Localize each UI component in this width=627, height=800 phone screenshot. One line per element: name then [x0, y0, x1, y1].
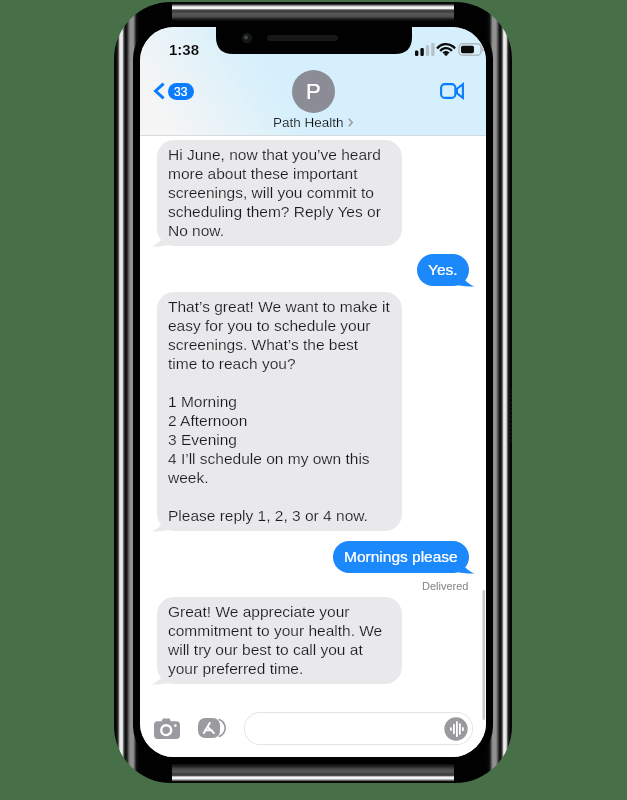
staticText: Path Health: [273, 115, 344, 130]
button[interactable]: Back, 33 unread messages: [149, 77, 199, 105]
staticText: Delivered: [422, 580, 469, 592]
button[interactable]: [244, 712, 473, 745]
staticText: Yes.: [428, 261, 458, 278]
staticText: 33: [174, 85, 188, 98]
button[interactable]: Hi June, now that you’ve heard more abou…: [157, 140, 402, 246]
button[interactable]: Yes.: [417, 254, 469, 286]
button[interactable]: Mornings please: [333, 541, 469, 573]
staticText: P: [306, 79, 321, 104]
button[interactable]: App Store: [198, 718, 227, 738]
button[interactable]: Camera: [154, 718, 180, 739]
staticText: Hi June, now that you’ve heard more abou…: [168, 146, 391, 240]
staticText: Mornings please: [344, 548, 458, 565]
button[interactable]: P: [292, 70, 335, 113]
button[interactable]: FaceTime video call: [434, 77, 470, 105]
button[interactable]: That’s great! We want to make it easy fo…: [157, 292, 402, 531]
staticText: Great! We appreciate your commitment to …: [168, 603, 391, 678]
button[interactable]: Great! We appreciate your commitment to …: [157, 597, 402, 684]
staticText: 1:38: [169, 41, 200, 58]
staticText: That’s great! We want to make it easy fo…: [168, 298, 391, 525]
